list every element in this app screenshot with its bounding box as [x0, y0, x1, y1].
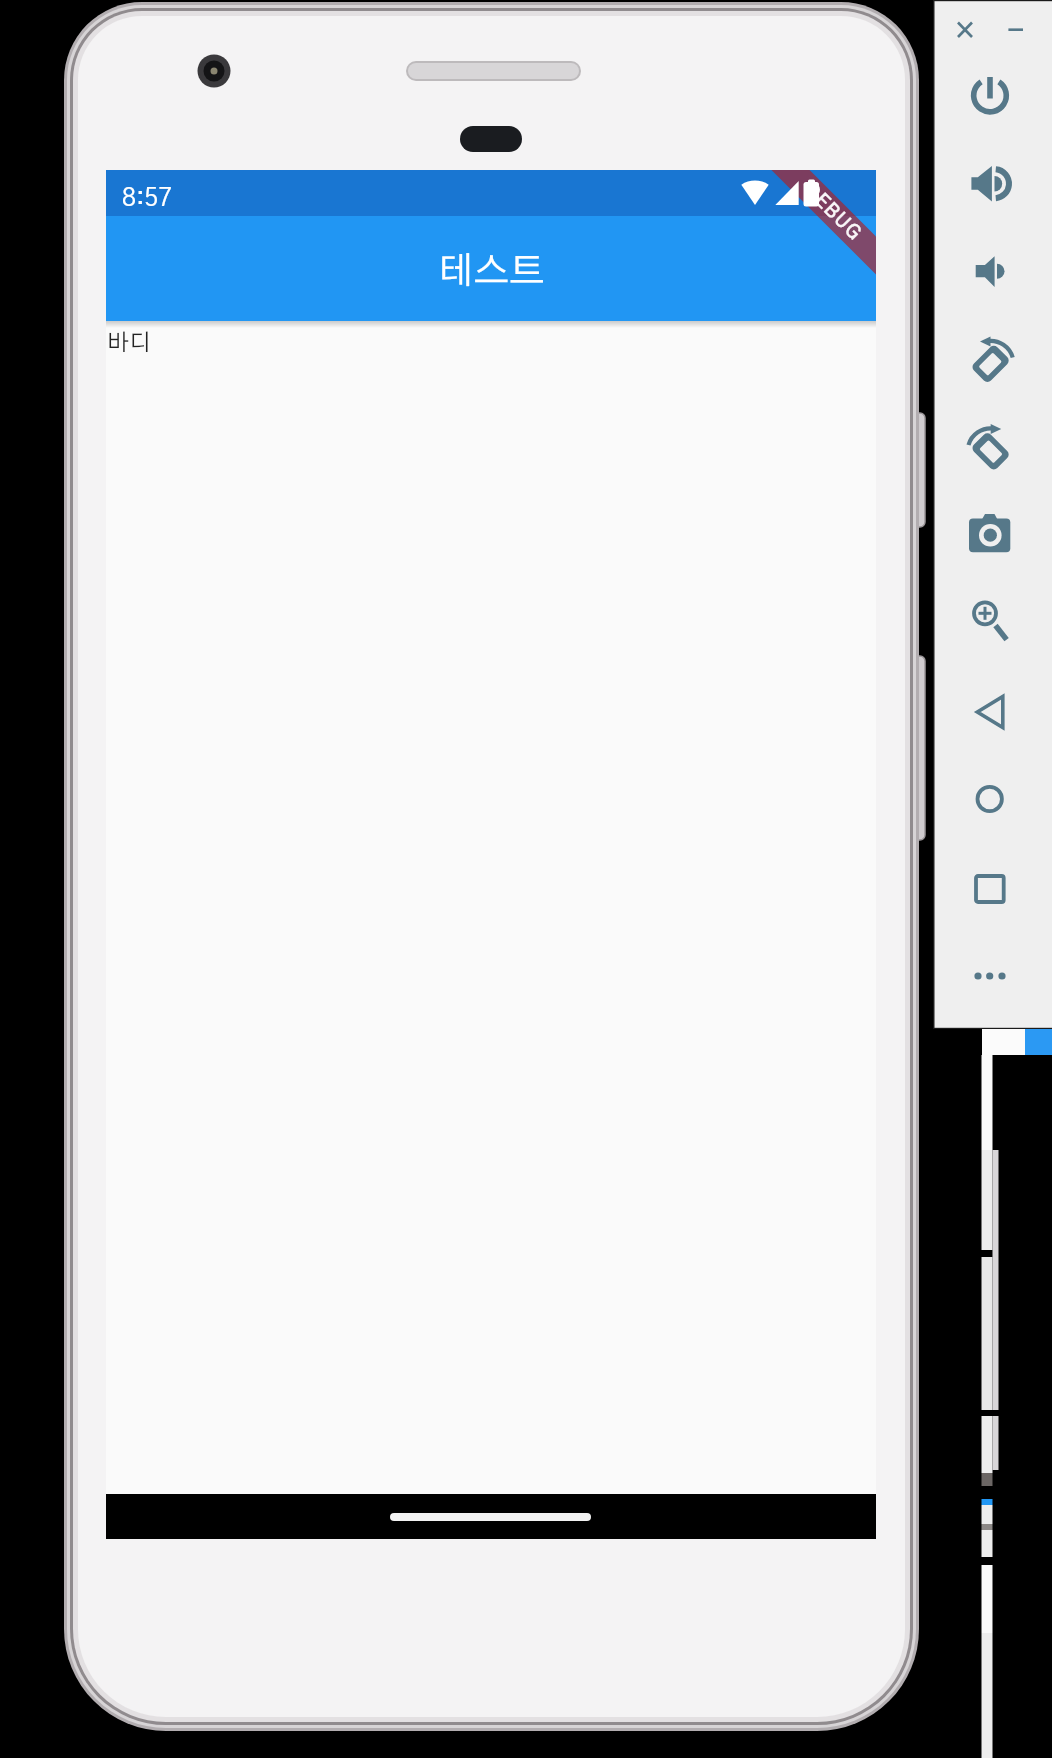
button[interactable]	[951, 12, 979, 46]
button[interactable]	[966, 768, 1014, 816]
button[interactable]	[390, 1513, 591, 1521]
staticText: 8:57	[122, 186, 173, 211]
button[interactable]	[966, 855, 1014, 903]
button[interactable]	[966, 246, 1014, 294]
button[interactable]	[966, 507, 1014, 555]
staticText: 테스트	[438, 253, 545, 290]
button[interactable]	[106, 216, 876, 321]
button[interactable]	[966, 681, 1014, 729]
staticText: 바디	[107, 332, 152, 355]
button[interactable]	[966, 594, 1014, 642]
button[interactable]	[966, 159, 1014, 207]
button[interactable]	[966, 72, 1014, 120]
staticText: DEBUG	[801, 180, 865, 245]
button[interactable]	[1001, 12, 1029, 46]
button[interactable]	[966, 333, 1014, 381]
button[interactable]	[966, 420, 1014, 468]
button[interactable]	[966, 942, 1014, 990]
